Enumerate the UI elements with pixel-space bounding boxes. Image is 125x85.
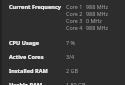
staticText: Installed RAM xyxy=(9,67,48,75)
button[interactable]: Usable RAM xyxy=(9,75,121,85)
staticText: 2 GB xyxy=(66,67,78,74)
staticText: CPU Usage xyxy=(9,39,40,47)
staticText: Core 3 xyxy=(66,17,83,24)
staticText: 988 MHz xyxy=(86,3,109,10)
button[interactable]: CPU Usage xyxy=(9,31,121,47)
staticText: 988 MHz xyxy=(86,10,109,17)
staticText: Usable RAM xyxy=(9,81,43,85)
staticText: 7 % xyxy=(66,39,75,46)
staticText: Core 4 xyxy=(66,24,83,31)
staticText: 988 MHz xyxy=(86,24,109,31)
button[interactable]: Active Cores xyxy=(9,47,121,61)
staticText: Active Cores xyxy=(9,53,44,61)
staticText: Core 1 xyxy=(66,3,83,10)
button[interactable]: Installed RAM xyxy=(9,61,121,75)
staticText: 0 MHz xyxy=(86,17,102,24)
staticText: 1.89 GB xyxy=(66,81,86,85)
staticText: 3/4 xyxy=(66,53,75,60)
button[interactable]: Current Frequency xyxy=(9,3,121,31)
staticText: Core 2 xyxy=(66,10,83,17)
staticText: Current Frequency xyxy=(9,3,61,11)
